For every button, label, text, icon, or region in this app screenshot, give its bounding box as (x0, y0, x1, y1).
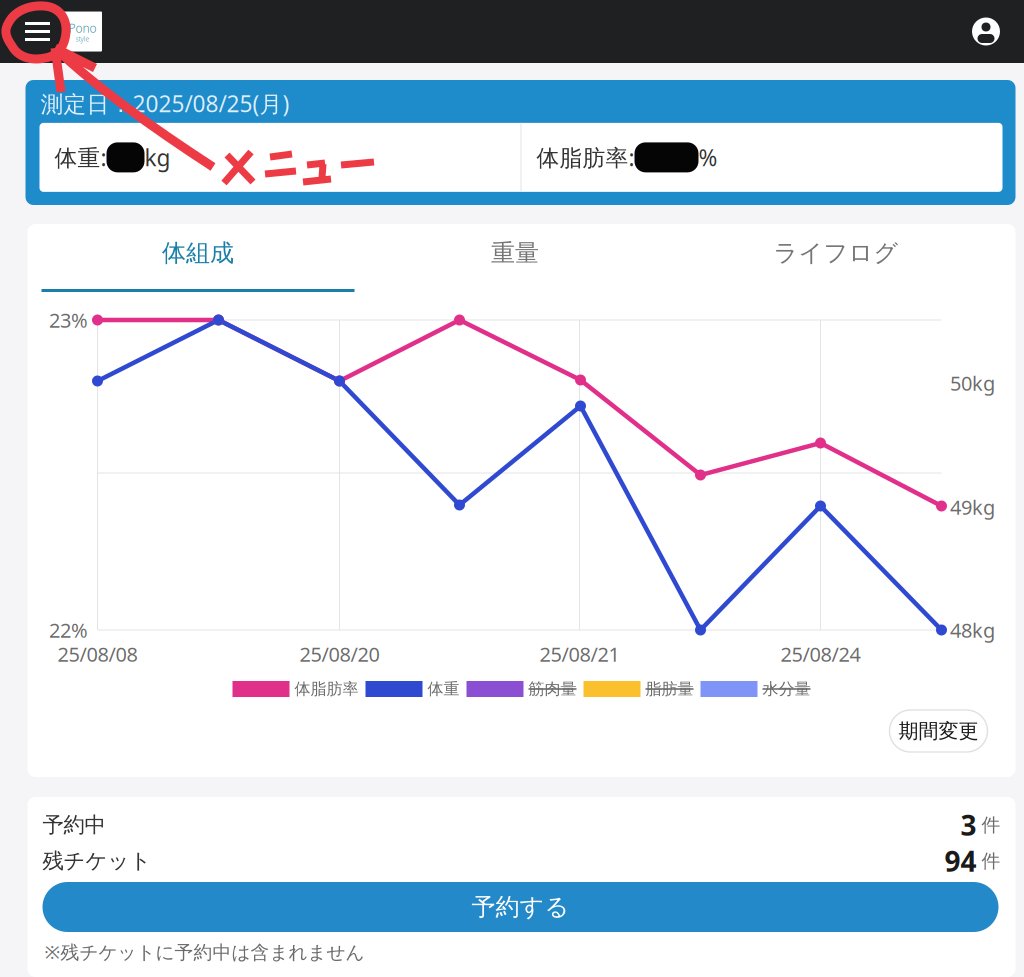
staticText: 25/08/21 (539, 640, 619, 668)
staticText: Pono (68, 20, 96, 36)
staticText: 50kg (950, 369, 995, 397)
button[interactable]: 体重 (365, 679, 459, 699)
staticText: 94 (944, 842, 976, 880)
staticText: 脂肪量 (645, 679, 693, 699)
staticText: 残チケット (42, 848, 151, 874)
staticText: 体脂肪率: (536, 142, 634, 173)
staticText: ライフログ (773, 238, 898, 268)
button[interactable]: pono style home (63, 11, 102, 51)
staticText: 件 (981, 849, 1000, 873)
staticText: 測定日：2025/08/25(月) (40, 88, 289, 119)
staticText: kg (144, 142, 170, 173)
button[interactable]: 水分量 (700, 679, 810, 699)
staticText: 予約する (471, 892, 569, 922)
button[interactable]: 期間変更 (889, 710, 987, 752)
staticText: 23% (49, 306, 88, 334)
staticText: 25/08/24 (780, 640, 860, 668)
staticText: 重量 (491, 238, 539, 268)
button[interactable]: ライフログ (675, 239, 996, 292)
button[interactable]: 脂肪量 (583, 679, 693, 699)
staticText: % (698, 142, 717, 173)
staticText: 25/08/08 (57, 640, 137, 668)
button[interactable]: Account (972, 0, 1024, 63)
button[interactable]: Menu (0, 0, 63, 63)
staticText: ※残チケットに予約中は含まれません (44, 939, 364, 964)
staticText: 49kg (950, 493, 995, 521)
button[interactable]: 体組成 (41, 239, 354, 292)
staticText: 体重: (54, 142, 106, 173)
button[interactable]: 筋肉量 (466, 679, 576, 699)
staticText: 48kg (950, 616, 995, 644)
staticText: 水分量 (762, 679, 810, 699)
staticText: 筋肉量 (528, 679, 576, 699)
staticText: 体重 (427, 679, 459, 699)
button[interactable]: 重量 (354, 239, 675, 292)
staticText: 22% (49, 616, 88, 644)
button[interactable]: 体脂肪率 (232, 679, 358, 699)
staticText: 期間変更 (898, 718, 978, 744)
staticText: 25/08/20 (299, 640, 379, 668)
staticText: 3 (960, 806, 976, 844)
staticText: 体組成 (162, 238, 234, 268)
staticText: 体脂肪率 (294, 679, 358, 699)
staticText: style (75, 34, 89, 44)
staticText: 予約中 (42, 812, 105, 838)
staticText: 件 (981, 813, 1000, 837)
button[interactable]: 予約する (42, 882, 998, 932)
